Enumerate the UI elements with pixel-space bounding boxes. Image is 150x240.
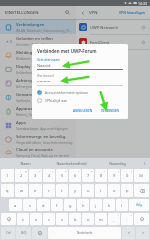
button[interactable]: Meldingen: [0, 48, 76, 62]
staticText: Del: [139, 174, 144, 178]
staticText: Wachtwoord: [37, 74, 55, 78]
button[interactable]: Accountinformatie opslaan: [37, 90, 123, 95]
button[interactable]: b: [69, 213, 81, 225]
button[interactable]: 2: [15, 169, 28, 182]
button[interactable]: ANNULEREN: [70, 107, 96, 115]
button[interactable]: 9: [108, 169, 120, 182]
button[interactable]: q: [1, 184, 14, 197]
button[interactable]: 1: [1, 169, 14, 182]
button[interactable]: Umschalt: [1, 213, 16, 225]
staticText: x: [35, 217, 38, 222]
button[interactable]: j: [90, 199, 102, 211]
staticText: a: [14, 203, 17, 208]
button[interactable]: Nederlands: [48, 227, 121, 239]
button[interactable]: d: [37, 199, 50, 211]
button[interactable]: c: [43, 213, 55, 225]
button[interactable]: p: [121, 184, 133, 197]
button[interactable]: m: [95, 213, 107, 225]
staticText: 7: [87, 173, 90, 178]
button[interactable]: 7: [82, 169, 94, 182]
staticText: .: [126, 217, 128, 222]
button[interactable]: v: [56, 213, 68, 225]
button[interactable]: 6: [69, 169, 81, 182]
staticText: ): [131, 170, 132, 173]
staticText: !: [118, 214, 119, 217]
button[interactable]: f: [51, 199, 63, 211]
staticText: &: [91, 170, 93, 173]
button[interactable]: Naamdag: [94, 161, 140, 166]
button[interactable]: 4: [43, 169, 55, 182]
staticText: UWP-Netzwerk: [90, 25, 119, 30]
button[interactable]: VERBINDEN: [98, 107, 123, 115]
button[interactable]: Apparaat: [0, 104, 76, 118]
button[interactable]: Naam: [2, 161, 48, 166]
staticText: Geluiden, Trillen, Niet storen: [16, 43, 59, 47]
button[interactable]: Schermvergr. en beveilig.: [0, 132, 76, 146]
button[interactable]: Mehr Vorschläge: [140, 162, 148, 165]
staticText: $: [52, 170, 54, 173]
button[interactable]: Zurück: [79, 9, 87, 17]
button[interactable]: e: [29, 184, 42, 197]
staticText: u: [87, 188, 90, 193]
button[interactable]: Achtergrond: [0, 76, 76, 90]
button[interactable]: k: [103, 199, 115, 211]
button[interactable]: z: [17, 213, 29, 225]
button[interactable]: 0: [121, 169, 133, 182]
button[interactable]: 3: [29, 169, 42, 182]
button[interactable]: x: [30, 213, 42, 225]
button[interactable]: Cloud en accounts: [0, 146, 76, 158]
staticText: VPN hinzufügen: [119, 10, 146, 15]
staticText: (: [118, 170, 119, 173]
staticText: Naam: [20, 161, 31, 166]
button[interactable]: Umschalt rechts: [134, 213, 149, 225]
staticText: o: [113, 188, 116, 193]
button[interactable]: ,: [108, 213, 120, 225]
button[interactable]: VPN hinzufügen: [118, 8, 147, 17]
button[interactable]: s: [23, 199, 36, 211]
staticText: ANNULEREN: [73, 109, 93, 113]
staticText: 4: [48, 173, 51, 178]
button[interactable]: Volg.: [129, 199, 149, 211]
button[interactable]: Verbindungen: [0, 20, 76, 34]
staticText: %: [65, 170, 67, 173]
button[interactable]: g: [64, 199, 76, 211]
button[interactable]: u: [82, 184, 94, 197]
button[interactable]: Geavanceerde functies: [0, 90, 76, 104]
button[interactable]: Apps: [0, 118, 76, 132]
button[interactable]: n: [82, 213, 94, 225]
staticText: n: [87, 217, 90, 222]
button[interactable]: Ctrl: [1, 227, 15, 239]
staticText: Meldingen: [16, 50, 38, 56]
button[interactable]: Suchen: [63, 8, 72, 17]
button[interactable]: Naambekendheid: [48, 161, 94, 166]
button[interactable]: l: [116, 199, 128, 211]
button[interactable]: Einstellungen: [139, 23, 147, 31]
button[interactable]: Rechts: [136, 227, 149, 239]
button[interactable]: VPN altijd aan: [37, 98, 123, 103]
button[interactable]: Links: [122, 227, 135, 239]
button[interactable]: Rücktaste: [134, 184, 149, 197]
button[interactable]: Einstellungen: [139, 38, 147, 46]
button[interactable]: a: [9, 199, 22, 211]
button[interactable]: UWP-Netzwerk: [76, 20, 150, 34]
button[interactable]: i: [95, 184, 107, 197]
button[interactable]: y: [69, 184, 81, 197]
staticText: FornClient: [90, 40, 110, 45]
button[interactable]: w: [15, 184, 28, 197]
button[interactable]: 8: [95, 169, 107, 182]
button[interactable]: .: [121, 213, 133, 225]
button[interactable]: 5: [56, 169, 68, 182]
button[interactable]: Display: [0, 62, 76, 76]
button[interactable]: r: [43, 184, 55, 197]
button[interactable]: Emoji: [32, 227, 47, 239]
staticText: j: [95, 203, 97, 208]
button[interactable]: Del: [134, 169, 149, 182]
staticText: Naanid: [37, 63, 51, 68]
button[interactable]: h: [77, 199, 89, 211]
button[interactable]: Sl/Q: [16, 227, 31, 239]
staticText: Verbindungen: [16, 22, 45, 28]
button[interactable]: t: [56, 184, 68, 197]
button[interactable]: FornClient: [76, 35, 150, 49]
button[interactable]: o: [108, 184, 120, 197]
button[interactable]: Geluiden en trillen: [0, 34, 76, 48]
